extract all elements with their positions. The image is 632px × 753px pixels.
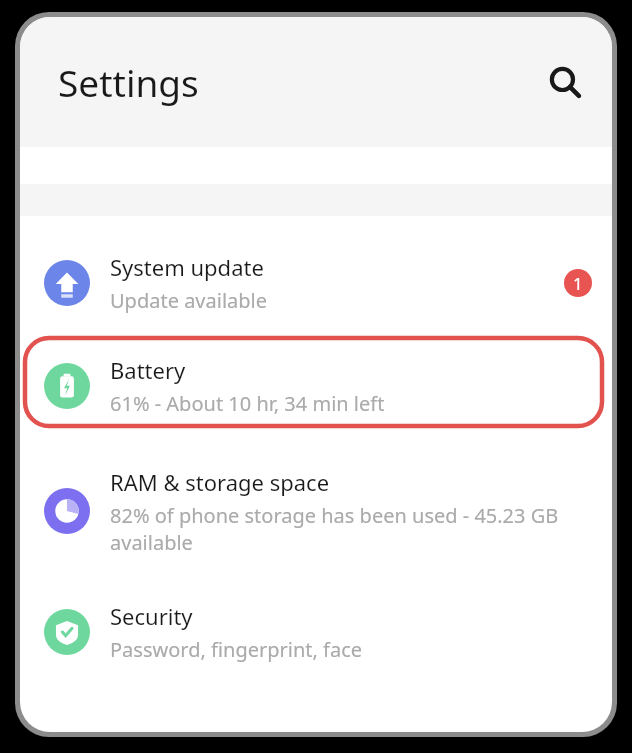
staticText: Settings <box>58 57 199 107</box>
button[interactable]: RAM & storage space <box>20 440 612 582</box>
staticText: Update available <box>110 287 268 314</box>
staticText: Battery <box>110 355 186 385</box>
staticText: System update <box>110 252 264 282</box>
staticText: Password, fingerprint, face <box>110 636 363 663</box>
staticText: 61% - About 10 hr, 34 min left <box>110 390 385 417</box>
staticText: 1 <box>573 272 583 295</box>
button[interactable]: System update <box>20 234 612 332</box>
staticText: 82% of phone storage has been used - 45.… <box>110 502 592 556</box>
staticText: RAM & storage space <box>110 467 330 497</box>
staticText: Security <box>110 601 193 631</box>
button[interactable]: Battery <box>20 332 612 440</box>
button[interactable]: Search <box>540 57 590 107</box>
button[interactable]: Security <box>20 582 612 682</box>
